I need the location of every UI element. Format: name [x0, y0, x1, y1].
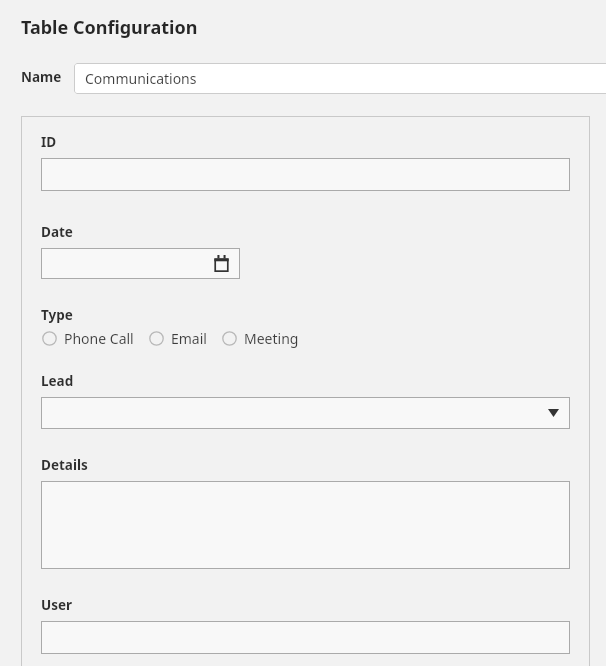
- staticText: Table Configuration: [21, 15, 198, 40]
- button[interactable]: Lead dropdown: [41, 397, 570, 429]
- staticText: ID: [41, 133, 57, 151]
- button[interactable]: Email: [149, 329, 207, 348]
- button[interactable]: Details text area: [41, 481, 570, 569]
- button[interactable]: ID input: [41, 158, 570, 191]
- staticText: Type: [41, 306, 73, 324]
- button[interactable]: User input: [41, 621, 570, 654]
- button[interactable]: Date picker: [41, 248, 240, 279]
- button[interactable]: Phone Call: [42, 329, 134, 348]
- staticText: User: [41, 596, 73, 614]
- staticText: Date: [41, 223, 73, 241]
- staticText: Details: [41, 456, 88, 474]
- staticText: Communications: [85, 69, 197, 88]
- staticText: Phone Call: [64, 329, 134, 348]
- staticText: Lead: [41, 372, 74, 390]
- staticText: Email: [171, 329, 207, 348]
- staticText: Name: [21, 68, 62, 86]
- button[interactable]: Communications: [74, 63, 606, 94]
- button[interactable]: Meeting: [222, 329, 299, 348]
- staticText: Meeting: [244, 329, 299, 348]
